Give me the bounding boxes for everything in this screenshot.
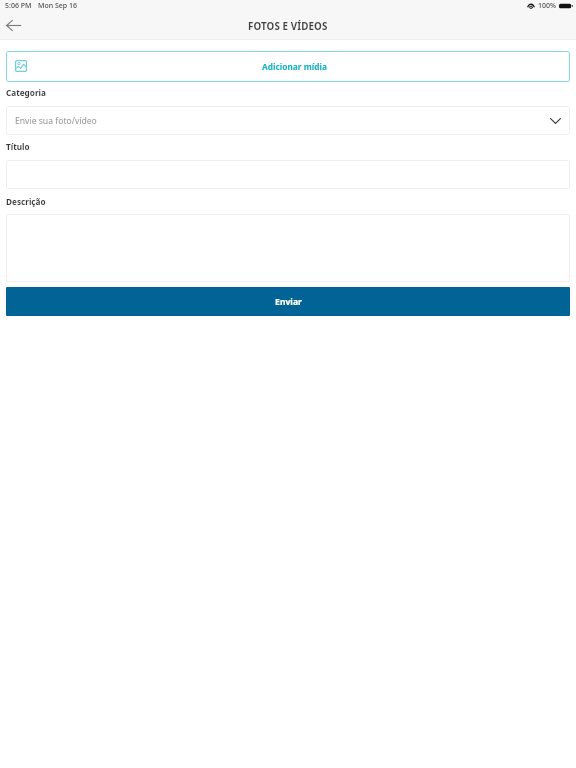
staticText: Descrição (6, 196, 46, 207)
staticText: Categoria (6, 87, 46, 98)
button[interactable] (6, 160, 570, 189)
button[interactable]: Back (3, 15, 24, 36)
staticText: Envie sua foto/vídeo (15, 115, 97, 127)
staticText: Mon Sep 16 (38, 1, 77, 11)
staticText: Adicionar mídia (262, 61, 327, 72)
button[interactable]: Adicionar mídia (6, 51, 570, 82)
staticText: 100% (538, 1, 556, 11)
staticText: 5:06 PM (5, 1, 32, 11)
staticText: Enviar (275, 296, 302, 308)
staticText: FOTOS E VÍDEOS (248, 20, 328, 33)
staticText: Título (6, 141, 30, 152)
button[interactable]: Enviar (6, 287, 570, 316)
button[interactable]: Envie sua foto/vídeo (6, 106, 570, 135)
